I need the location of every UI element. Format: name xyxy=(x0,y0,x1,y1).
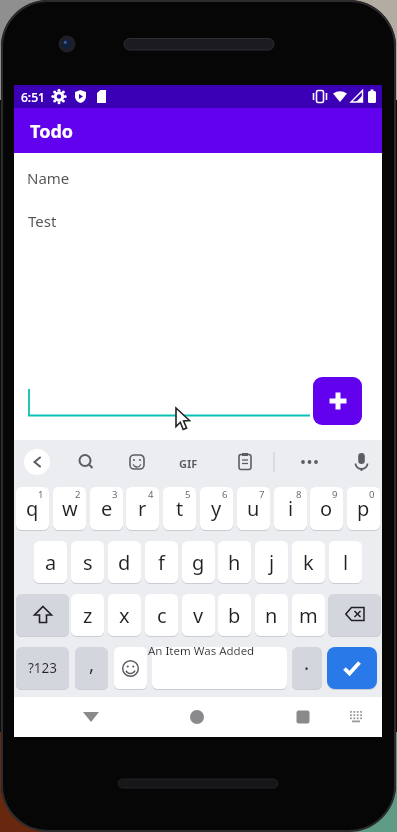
staticText: e xyxy=(101,495,113,522)
button[interactable] xyxy=(348,448,376,476)
button[interactable]: t xyxy=(163,487,196,530)
button[interactable] xyxy=(16,594,69,636)
staticText: Test xyxy=(28,211,57,231)
staticText: f xyxy=(158,549,165,576)
button[interactable] xyxy=(124,448,152,476)
staticText: t xyxy=(176,495,184,522)
staticText: c xyxy=(157,602,167,629)
button[interactable] xyxy=(71,697,111,737)
staticText: w xyxy=(62,495,78,522)
staticText: l xyxy=(343,549,349,576)
button[interactable]: w xyxy=(53,487,86,530)
button[interactable]: e xyxy=(90,487,123,530)
button[interactable]: n xyxy=(255,594,288,636)
button[interactable]: m xyxy=(292,594,325,636)
button[interactable] xyxy=(290,448,318,476)
staticText: . xyxy=(304,650,310,676)
staticText: 3 xyxy=(112,488,118,501)
button[interactable] xyxy=(226,448,254,476)
staticText: 6:51 xyxy=(21,89,45,105)
button[interactable]: v xyxy=(182,594,215,636)
button[interactable]: . xyxy=(292,647,322,689)
staticText: 1 xyxy=(38,488,44,501)
button[interactable] xyxy=(152,647,287,689)
staticText: An Item Was Added xyxy=(148,643,255,659)
staticText: z xyxy=(83,602,93,629)
staticText: ?123 xyxy=(28,659,58,677)
staticText: 9 xyxy=(332,488,338,501)
button[interactable]: h xyxy=(218,541,251,583)
staticText: d xyxy=(118,549,131,576)
button[interactable]: i xyxy=(274,487,307,530)
staticText: o xyxy=(320,495,333,522)
button[interactable]: z xyxy=(71,594,104,636)
button[interactable]: r xyxy=(126,487,159,530)
staticText: u xyxy=(247,495,260,522)
button[interactable]: l xyxy=(329,541,362,583)
button[interactable]: f xyxy=(145,541,178,583)
button[interactable]: ?123 xyxy=(16,647,69,689)
button[interactable] xyxy=(72,448,100,476)
staticText: 0 xyxy=(369,488,375,501)
button[interactable]: c xyxy=(145,594,178,636)
staticText: i xyxy=(288,495,294,522)
button[interactable] xyxy=(313,377,362,425)
staticText: , xyxy=(89,651,95,677)
staticText: 8 xyxy=(296,488,302,501)
button[interactable] xyxy=(177,697,217,737)
button[interactable]: p xyxy=(347,487,380,530)
button[interactable]: x xyxy=(108,594,141,636)
button[interactable]: o xyxy=(310,487,343,530)
staticText: m xyxy=(299,602,318,629)
staticText: y xyxy=(211,495,222,522)
button[interactable]: y xyxy=(200,487,233,530)
staticText: n xyxy=(265,602,278,629)
staticText: k xyxy=(303,549,314,576)
staticText: v xyxy=(193,602,204,629)
staticText: r xyxy=(138,495,147,522)
button[interactable]: q xyxy=(16,487,49,530)
button[interactable]: , xyxy=(75,647,108,689)
staticText: s xyxy=(83,549,93,576)
staticText: a xyxy=(45,549,57,576)
staticText: GIF xyxy=(179,456,198,471)
staticText: 5 xyxy=(185,488,191,501)
button[interactable] xyxy=(328,594,381,636)
button[interactable]: j xyxy=(255,541,288,583)
button[interactable]: s xyxy=(71,541,104,583)
staticText: 2 xyxy=(75,488,81,501)
button[interactable] xyxy=(24,448,52,476)
button[interactable]: u xyxy=(237,487,270,530)
staticText: x xyxy=(119,602,130,629)
button[interactable]: k xyxy=(292,541,325,583)
button[interactable] xyxy=(283,697,323,737)
staticText: h xyxy=(228,549,241,576)
staticText: 7 xyxy=(259,488,265,501)
staticText: Todo xyxy=(30,119,74,144)
button[interactable] xyxy=(28,387,310,417)
staticText: j xyxy=(269,549,275,576)
staticText: b xyxy=(228,602,241,629)
staticText: g xyxy=(192,549,205,576)
button[interactable]: g xyxy=(182,541,215,583)
staticText: p xyxy=(357,495,370,522)
staticText: Name xyxy=(27,168,70,188)
button[interactable] xyxy=(174,448,202,476)
button[interactable]: d xyxy=(108,541,141,583)
staticText: q xyxy=(26,495,39,522)
staticText: 6 xyxy=(222,488,228,501)
button[interactable] xyxy=(114,647,147,689)
button[interactable] xyxy=(327,647,377,689)
button[interactable]: a xyxy=(34,541,67,583)
staticText: 4 xyxy=(148,488,154,501)
button[interactable] xyxy=(342,697,372,737)
button[interactable]: b xyxy=(218,594,251,636)
